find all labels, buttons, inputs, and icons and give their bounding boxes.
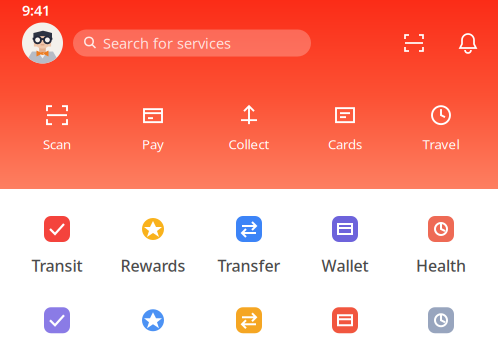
staticText: Transfer: [217, 255, 280, 276]
staticText: Travel: [422, 135, 459, 153]
button[interactable]: Travel: [393, 102, 489, 153]
button[interactable]: Delivery: [297, 306, 393, 351]
button[interactable]: Cards: [297, 102, 393, 153]
staticText: Wallet: [321, 255, 368, 276]
button[interactable]: Health: [393, 215, 489, 276]
staticText: Health: [416, 255, 466, 276]
button[interactable]: Transit: [9, 215, 105, 276]
staticText: Transit: [31, 255, 82, 276]
button[interactable]: Collect: [201, 102, 297, 153]
button[interactable]: Scan: [402, 31, 426, 55]
button[interactable]: Coupons: [201, 306, 297, 351]
button[interactable]: Rewards: [105, 215, 201, 276]
button[interactable]: Scan: [9, 102, 105, 153]
button[interactable]: Pay: [105, 102, 201, 153]
staticText: Pay: [142, 135, 164, 153]
button[interactable]: Profile: [22, 22, 63, 63]
staticText: Cards: [328, 135, 362, 153]
button[interactable]: Insurance: [9, 306, 105, 351]
button[interactable]: Messages: [456, 31, 480, 55]
staticText: Scan: [43, 135, 71, 153]
button[interactable]: Transfer: [201, 215, 297, 276]
staticText: Rewards: [120, 255, 185, 276]
staticText: Search for services: [103, 33, 231, 53]
button[interactable]: Wallet: [297, 215, 393, 276]
button[interactable]: Search: [73, 29, 311, 56]
staticText: 9:41: [22, 0, 50, 20]
staticText: Collect: [228, 135, 269, 153]
button[interactable]: Savings: [105, 306, 201, 351]
button[interactable]: More: [393, 306, 489, 351]
